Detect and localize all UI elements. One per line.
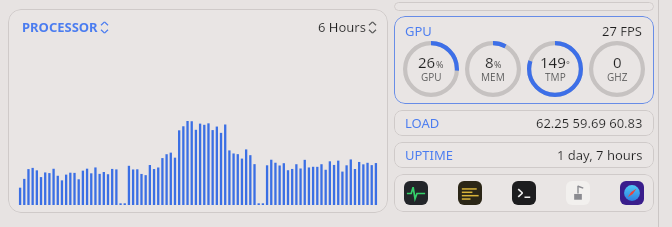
staticText: GPU [421,70,442,84]
button[interactable]: Console [458,181,482,205]
button[interactable]: Safari [620,181,644,205]
button[interactable]: Activity Monitor [404,181,428,205]
staticText: 62.25 59.69 60.83 [536,114,643,132]
staticText: 6 Hours [318,18,366,36]
staticText: ° [566,58,570,70]
button[interactable]: PROCESSOR [8,9,388,213]
staticText: 0 [613,52,622,72]
staticText: LOAD [405,114,440,132]
staticText: % [436,58,444,70]
button[interactable]: TMP 149° [526,40,584,98]
staticText: PROCESSOR [22,18,98,36]
staticText: UPTIME [405,146,454,164]
staticText: GHZ [607,70,628,84]
staticText: 26 [418,52,436,72]
button[interactable]: Terminal [512,181,536,205]
button[interactable]: Archive Utility [566,181,590,205]
staticText: 8 [485,52,494,72]
button[interactable]: GPU 26% [402,40,460,98]
button[interactable]: GPU [394,16,654,104]
button[interactable]: UPTIME [394,142,654,168]
staticText: 1 day, 7 hours [557,146,643,164]
button[interactable]: GHZ 0 [588,40,646,98]
button[interactable]: LOAD [394,110,654,136]
staticText: GPU [405,22,432,40]
staticText: 149 [540,52,566,72]
staticText: MEM [481,70,505,84]
staticText: % [494,58,502,70]
button[interactable]: MEM 8% [464,40,522,98]
staticText: TMP [545,70,566,84]
staticText: 27 FPS [602,22,643,40]
